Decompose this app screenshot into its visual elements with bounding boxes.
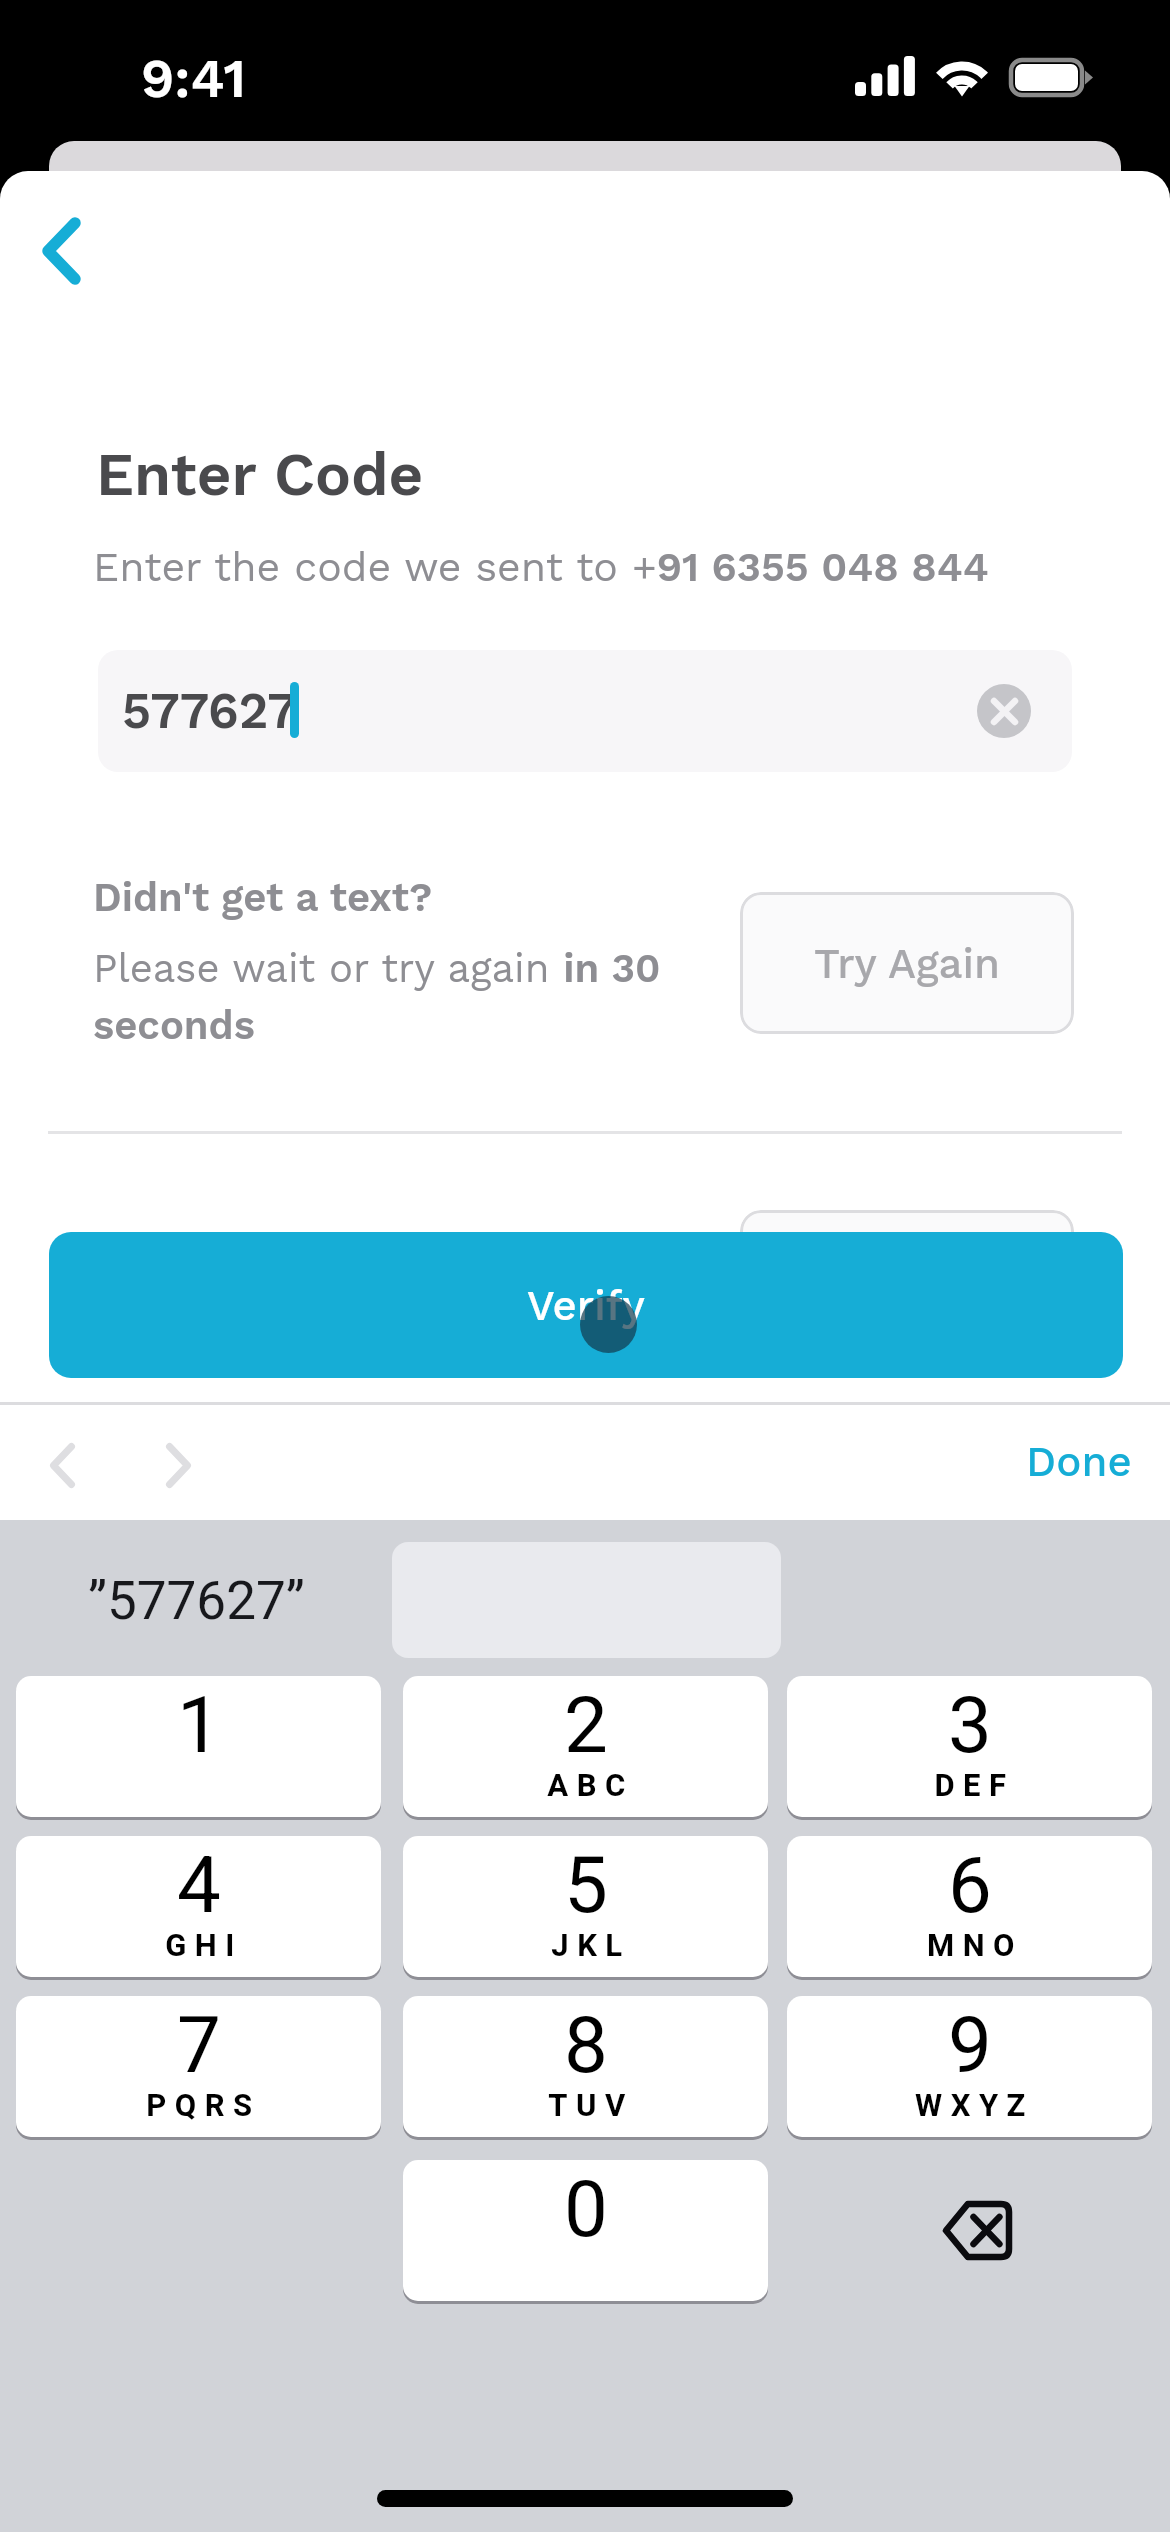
staticText: MNO — [927, 1924, 1023, 1970]
staticText: 7 — [177, 1996, 221, 2105]
button[interactable]: Back — [11, 199, 111, 303]
staticText: 4 — [177, 1836, 221, 1945]
staticText: 5 — [564, 1836, 608, 1945]
staticText: 9 — [948, 1996, 992, 2105]
button[interactable]: Try Again — [740, 892, 1074, 1034]
staticText: 0 — [564, 2160, 608, 2269]
staticText: ”577627” — [88, 1563, 305, 1641]
staticText: JKL — [551, 1924, 631, 1970]
staticText: Done — [1026, 1437, 1132, 1486]
button[interactable]: 3 — [787, 1676, 1152, 1817]
staticText: 2 — [564, 1676, 608, 1785]
button[interactable]: 1 — [16, 1676, 381, 1817]
button[interactable]: 7 — [16, 1996, 381, 2137]
staticText: 6 — [948, 1836, 992, 1945]
button[interactable]: Verify — [49, 1232, 1123, 1378]
button[interactable]: Next field — [146, 1423, 210, 1507]
staticText: GHI — [165, 1924, 243, 1970]
staticText: 577627 — [122, 681, 297, 740]
staticText: Please wait or try again in 30 seconds — [93, 945, 693, 1049]
button[interactable]: 0 — [403, 2160, 768, 2301]
staticText: Verify — [527, 1281, 645, 1330]
staticText: TUV — [548, 2084, 634, 2130]
button[interactable]: 2 — [403, 1676, 768, 1817]
staticText: Enter Code — [96, 439, 424, 509]
button[interactable]: 9 — [787, 1996, 1152, 2137]
button[interactable]: Clear code — [977, 684, 1031, 738]
staticText: WXYZ — [915, 2084, 1034, 2130]
staticText: ABC — [547, 1764, 634, 1810]
button[interactable]: Done — [1026, 1437, 1132, 1486]
staticText: PQRS — [146, 2084, 261, 2130]
button[interactable]: 6 — [787, 1836, 1152, 1977]
button[interactable]: Previous field — [30, 1423, 94, 1507]
staticText: 1 — [177, 1676, 221, 1785]
staticText: 9:41 — [141, 47, 247, 110]
button[interactable]: 5 — [403, 1836, 768, 1977]
staticText: Enter the code we sent to +91 6355 048 8… — [93, 543, 989, 591]
button[interactable]: Backspace — [794, 2160, 1159, 2301]
button[interactable]: 4 — [16, 1836, 381, 1977]
button[interactable]: 577627 — [98, 650, 1072, 772]
staticText: 8 — [564, 1996, 608, 2105]
staticText: DEF — [934, 1764, 1015, 1810]
staticText: Try Again — [814, 939, 1001, 988]
staticText: Didn't get a text? — [93, 874, 433, 921]
staticText: 3 — [948, 1676, 992, 1785]
button[interactable]: 8 — [403, 1996, 768, 2137]
